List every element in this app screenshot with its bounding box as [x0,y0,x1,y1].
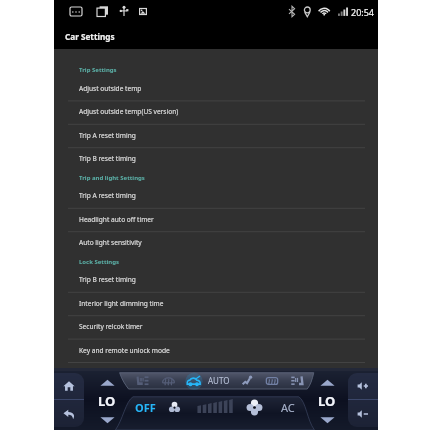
button[interactable]: Car Settings [54,23,378,49]
button[interactable]: OFF [128,396,162,418]
button[interactable]: Adjust outside temp [54,77,378,100]
button[interactable]: Fan decrease [164,396,184,418]
staticText: Adjust outside temp [79,84,142,93]
staticText: Trip A reset timing [79,191,136,200]
button[interactable]: Security relcok timer [54,315,378,338]
button[interactable]: Airflow [237,371,257,390]
staticText: OFF [135,400,156,415]
button[interactable]: Auto light sensitivity [54,231,378,254]
button[interactable]: Headlight auto off timer [54,208,378,231]
staticText: Security relcok timer [79,322,143,331]
staticText: Key and remote unlock mode [79,346,170,355]
button[interactable]: Air mode [287,371,307,390]
button[interactable]: Home [54,373,84,399]
button[interactable]: Recirculate [262,371,282,390]
staticText: Trip B reset timing [79,275,136,284]
staticText: Trip and light Settings [79,174,145,182]
button[interactable]: AUTO [204,370,234,390]
button[interactable]: Temperature up [319,378,335,387]
staticText: AUTO [208,375,230,386]
button[interactable]: Back [54,400,84,427]
staticText: Lock Settings [79,258,120,266]
button[interactable]: Trip B reset timing [54,268,378,291]
button[interactable]: Temperature up [99,378,115,387]
button[interactable]: Seat heater [132,371,152,390]
button[interactable]: Key and remote unlock mode [54,339,378,362]
staticText: 20:54 [351,6,375,18]
staticText: Interior light dimming time [79,299,164,308]
button[interactable]: Front defrost [184,371,204,390]
staticText: Adjust outside temp(US version) [79,107,179,116]
button[interactable]: Trip B reset timing [54,147,378,170]
staticText: LO [98,392,116,410]
staticText: Car Settings [65,31,115,42]
staticText: LO [318,392,336,410]
button[interactable]: AC [273,396,303,418]
button[interactable]: Fan increase [244,396,264,418]
button[interactable]: Volume up [348,373,378,399]
button[interactable]: Rear defrost [158,371,178,390]
button[interactable]: Interior light dimming time [54,292,378,315]
button[interactable]: Trip A reset timing [54,124,378,147]
staticText: Trip Settings [79,66,117,74]
button[interactable]: Temperature down [319,415,335,424]
staticText: Headlight auto off timer [79,215,154,224]
button[interactable]: Temperature down [99,415,115,424]
button[interactable]: Fan speed [196,399,235,413]
staticText: AC [281,400,295,415]
staticText: Auto light sensitivity [79,238,142,247]
staticText: Trip B reset timing [79,154,136,163]
staticText: Trip A reset timing [79,131,136,140]
button[interactable]: Trip A reset timing [54,184,378,207]
button[interactable]: Adjust outside temp(US version) [54,100,378,123]
button[interactable]: Volume down [348,400,378,427]
